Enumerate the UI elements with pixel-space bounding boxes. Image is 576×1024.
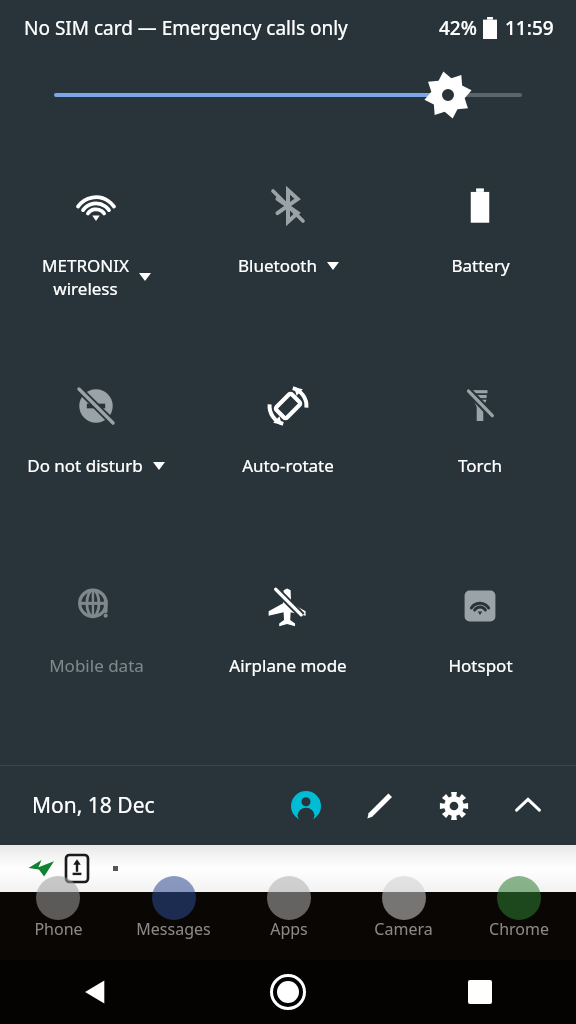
- staticText: Chrome: [489, 918, 549, 940]
- button[interactable]: Recent apps: [452, 964, 508, 1020]
- button[interactable]: Hotspot: [384, 550, 576, 750]
- staticText: Do not disturb: [27, 454, 143, 477]
- button[interactable]: Do not disturb: [0, 350, 192, 550]
- button[interactable]: User: [284, 784, 328, 828]
- button[interactable]: Airplane mode: [192, 550, 384, 750]
- button[interactable]: Brightness: [0, 70, 576, 120]
- staticText: Auto-rotate: [242, 454, 334, 477]
- button[interactable]: Battery: [384, 150, 576, 350]
- button[interactable]: Torch: [384, 350, 576, 550]
- staticText: Hotspot: [448, 654, 513, 677]
- button[interactable]: Back: [68, 964, 124, 1020]
- button[interactable]: Settings: [432, 784, 476, 828]
- staticText: Mobile data: [49, 654, 144, 677]
- button[interactable]: Collapse: [506, 784, 550, 828]
- staticText: Torch: [458, 454, 502, 477]
- staticText: Mon, 18 Dec: [32, 791, 155, 820]
- staticText: Bluetooth: [238, 254, 317, 277]
- button[interactable]: Edit: [358, 784, 402, 828]
- button[interactable]: METRONIX wireless: [0, 150, 192, 350]
- staticText: Messages: [136, 918, 211, 940]
- staticText: METRONIX wireless: [42, 254, 129, 300]
- staticText: Camera: [374, 918, 433, 940]
- staticText: 42%: [439, 15, 477, 41]
- button[interactable]: Mobile data: [0, 550, 192, 750]
- staticText: Phone: [34, 918, 83, 940]
- button[interactable]: Home: [260, 964, 316, 1020]
- staticText: Apps: [270, 918, 308, 940]
- staticText: Battery: [451, 254, 510, 277]
- staticText: No SIM card — Emergency calls only: [24, 15, 348, 41]
- staticText: 11:59: [505, 15, 554, 41]
- button[interactable]: Bluetooth: [192, 150, 384, 350]
- button[interactable]: Auto-rotate: [192, 350, 384, 550]
- staticText: Airplane mode: [229, 654, 347, 677]
